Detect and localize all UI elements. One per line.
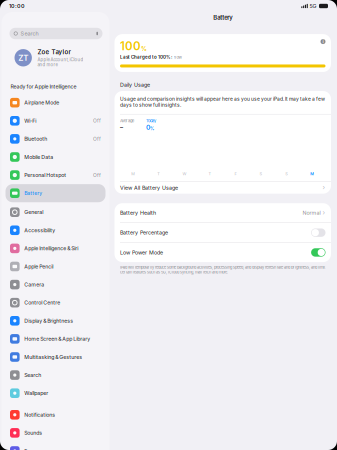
staticText: Focus	[24, 448, 39, 450]
staticText: Personal Hotspot	[24, 172, 66, 178]
button[interactable]: Search	[9, 28, 102, 39]
button[interactable]: Battery information	[320, 39, 325, 44]
staticText: 100	[120, 39, 141, 53]
staticText: Off	[93, 136, 101, 142]
button[interactable]: Multitasking & Gestures	[5, 348, 105, 366]
staticText: Multitasking & Gestures	[24, 354, 82, 360]
button[interactable]: View All Battery Usage	[114, 182, 331, 194]
staticText: ZT	[18, 53, 28, 63]
staticText: M	[310, 171, 314, 176]
staticText: 5G	[310, 3, 317, 9]
button[interactable]: Focus	[5, 442, 105, 450]
staticText: Control Centre	[24, 299, 60, 306]
staticText: Bluetooth	[24, 136, 47, 142]
staticText: S	[260, 171, 263, 176]
button[interactable]: Wallpaper	[5, 384, 105, 402]
button[interactable]: Accessibility	[5, 221, 105, 239]
staticText: Battery Percentage	[120, 229, 168, 236]
button[interactable]: Low Power Mode	[114, 243, 331, 262]
staticText: Display & Brightness	[24, 318, 73, 324]
staticText: 10:00	[9, 3, 25, 9]
button[interactable]: Bluetooth	[5, 130, 105, 148]
staticText: Battery	[24, 190, 42, 196]
staticText: Normal	[302, 210, 320, 216]
staticText: and more	[37, 62, 57, 67]
staticText: Camera	[24, 281, 44, 288]
staticText: %	[141, 45, 147, 52]
staticText: T	[157, 171, 160, 176]
staticText: Average	[120, 118, 134, 123]
button[interactable]: Mobile Data	[5, 148, 105, 166]
staticText: Last Charged to 100%:	[120, 54, 172, 60]
staticText: Zoe Taylor	[37, 48, 70, 56]
staticText: ›	[322, 184, 325, 192]
button[interactable]: Camera	[5, 275, 105, 294]
staticText: Low Power Mode	[120, 249, 163, 256]
staticText: Off	[93, 172, 101, 178]
staticText: %	[150, 126, 154, 131]
staticText: Battery	[213, 14, 232, 21]
staticText: Off	[93, 118, 101, 124]
staticText: 0	[146, 123, 150, 131]
button[interactable]: Battery	[5, 184, 105, 202]
staticText: Airplane Mode	[24, 99, 59, 106]
staticText: –	[120, 123, 123, 131]
button[interactable]: Notifications	[5, 406, 105, 424]
staticText: Search	[24, 372, 41, 378]
staticText: T	[208, 171, 211, 176]
button[interactable]: Search	[5, 366, 105, 384]
staticText: General	[24, 209, 43, 215]
staticText: Sounds	[24, 430, 42, 436]
staticText: Home Screen & App Library	[24, 336, 90, 342]
button[interactable]: General	[5, 203, 105, 221]
button[interactable]: Home Screen & App Library	[5, 330, 105, 348]
button[interactable]: Battery Percentage	[114, 223, 331, 242]
button[interactable]: Display & Brightness	[5, 312, 105, 330]
staticText: ›	[320, 209, 325, 217]
staticText: M	[131, 171, 135, 176]
button[interactable]: Battery Health	[114, 203, 331, 222]
staticText: Accessibility	[24, 227, 55, 233]
staticText: View All Battery Usage	[120, 184, 178, 191]
staticText: Search	[20, 30, 38, 37]
staticText: Wallpaper	[24, 390, 48, 396]
staticText: iPad will temporarily reduce some backgr…	[120, 265, 325, 274]
button[interactable]: Personal Hotspot	[5, 166, 105, 184]
button[interactable]: Wi-Fi	[5, 112, 105, 130]
staticText: Apple Account, iCloud	[37, 57, 83, 62]
staticText: Usage and comparison insights will appea…	[120, 96, 325, 108]
staticText: F	[234, 171, 236, 176]
staticText: Notifications	[24, 412, 55, 418]
staticText: Battery Health	[120, 210, 156, 216]
button[interactable]: ZT	[1, 39, 109, 67]
staticText: Mobile Data	[24, 154, 53, 160]
staticText: W	[182, 171, 186, 176]
staticText: now	[174, 55, 182, 60]
button[interactable]: Apple Pencil	[5, 257, 105, 275]
button[interactable]: Apple Intelligence & Siri	[5, 239, 105, 257]
staticText: S	[285, 171, 288, 176]
staticText: Ready for Apple Intelligence	[10, 83, 76, 90]
staticText: i	[322, 39, 323, 44]
button[interactable]: Control Centre	[5, 294, 105, 312]
staticText: Apple Pencil	[24, 263, 53, 270]
button[interactable]: Airplane Mode	[5, 94, 105, 112]
staticText: Daily Usage	[120, 82, 150, 88]
staticText: Wi-Fi	[24, 118, 36, 124]
button[interactable]: Sounds	[5, 424, 105, 442]
staticText: Today	[146, 118, 156, 123]
staticText: Apple Intelligence & Siri	[24, 245, 78, 251]
